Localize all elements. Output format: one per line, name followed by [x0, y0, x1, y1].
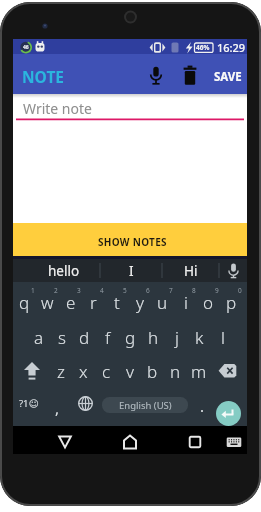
staticText: z — [57, 360, 65, 383]
staticText: u — [157, 291, 168, 314]
button[interactable]: s — [50, 322, 73, 352]
staticText: n — [170, 360, 181, 383]
button[interactable]: ?1☺ — [15, 390, 43, 417]
button[interactable] — [215, 356, 241, 386]
staticText: 4 — [100, 286, 104, 295]
button[interactable]: a — [27, 322, 50, 352]
staticText: NOTE — [22, 66, 65, 87]
button[interactable] — [54, 431, 76, 453]
button[interactable]: . — [191, 390, 213, 416]
staticText: 6 — [146, 286, 150, 295]
staticText: 7 — [169, 286, 173, 295]
staticText: h — [148, 326, 159, 349]
button[interactable]: 4 — [82, 286, 105, 316]
staticText: f — [105, 326, 111, 349]
button[interactable]: 8 — [174, 286, 197, 316]
staticText: w — [41, 291, 54, 314]
button[interactable] — [145, 63, 167, 89]
button[interactable]: SHOW NOTES — [13, 223, 247, 256]
button[interactable] — [223, 431, 245, 453]
staticText: 16:29 — [217, 40, 246, 55]
button[interactable]: m — [187, 356, 210, 386]
button[interactable]: hello — [13, 259, 100, 282]
button[interactable]: k — [188, 322, 211, 352]
staticText: Hi — [184, 262, 198, 280]
staticText: a — [34, 326, 44, 349]
button[interactable]: c — [95, 356, 118, 386]
staticText: l — [221, 326, 225, 349]
button[interactable]: 9 — [197, 286, 220, 316]
staticText: j — [175, 326, 179, 349]
staticText: ?1☺ — [19, 397, 39, 410]
button[interactable] — [184, 431, 206, 453]
staticText: y — [136, 291, 144, 314]
button[interactable] — [119, 431, 141, 453]
button[interactable]: 2 — [36, 286, 59, 316]
button[interactable] — [179, 64, 201, 88]
button[interactable] — [19, 356, 45, 386]
staticText: 9 — [215, 286, 219, 295]
button[interactable]: z — [49, 356, 72, 386]
button[interactable]: 3 — [59, 286, 82, 316]
button[interactable]: 5 — [105, 286, 128, 316]
staticText: c — [102, 360, 111, 383]
button[interactable]: d — [73, 322, 96, 352]
button[interactable]: f — [96, 322, 119, 352]
staticText: t — [114, 291, 120, 314]
staticText: i — [184, 291, 188, 314]
button[interactable]: SAVE — [209, 64, 246, 89]
staticText: . — [200, 396, 205, 416]
staticText: 46 — [23, 44, 29, 51]
staticText: x — [79, 360, 88, 383]
staticText: 0 — [238, 286, 242, 295]
staticText: q — [19, 291, 30, 314]
staticText: Write note — [23, 99, 92, 118]
staticText: hello — [48, 262, 80, 280]
button[interactable]: 6 — [128, 286, 151, 316]
staticText: SHOW NOTES — [98, 235, 167, 249]
staticText: v — [126, 360, 134, 383]
button[interactable]: Hi — [162, 259, 219, 282]
staticText: 46% — [196, 43, 210, 52]
button[interactable]: English (US) — [102, 397, 188, 413]
button[interactable] — [216, 401, 241, 426]
staticText: 1 — [31, 286, 35, 295]
button[interactable]: v — [118, 356, 141, 386]
staticText: g — [125, 326, 136, 349]
staticText: 3 — [77, 286, 81, 295]
button[interactable]: x — [72, 356, 95, 386]
staticText: s — [58, 326, 66, 349]
button[interactable]: 1 — [13, 286, 36, 316]
button[interactable]: j — [165, 322, 188, 352]
button[interactable]: 7 — [151, 286, 174, 316]
staticText: , — [55, 398, 60, 418]
staticText: r — [90, 291, 97, 314]
button[interactable]: , — [46, 390, 68, 418]
staticText: e — [66, 291, 76, 314]
button[interactable] — [74, 390, 97, 421]
staticText: 5 — [123, 286, 127, 295]
button[interactable]: l — [211, 322, 234, 352]
button[interactable]: h — [142, 322, 165, 352]
staticText: 8 — [192, 286, 196, 295]
staticText: English (US) — [119, 399, 172, 412]
staticText: p — [226, 291, 237, 314]
staticText: b — [147, 360, 158, 383]
staticText: k — [195, 326, 204, 349]
staticText: I — [129, 262, 134, 280]
button[interactable]: g — [119, 322, 142, 352]
staticText: 2 — [54, 286, 58, 295]
button[interactable]: I — [100, 259, 162, 282]
staticText: d — [79, 326, 90, 349]
button[interactable]: b — [141, 356, 164, 386]
staticText: o — [203, 291, 214, 314]
staticText: SAVE — [214, 69, 242, 85]
button[interactable]: 0 — [220, 286, 243, 316]
button[interactable]: n — [164, 356, 187, 386]
staticText: m — [191, 360, 207, 383]
